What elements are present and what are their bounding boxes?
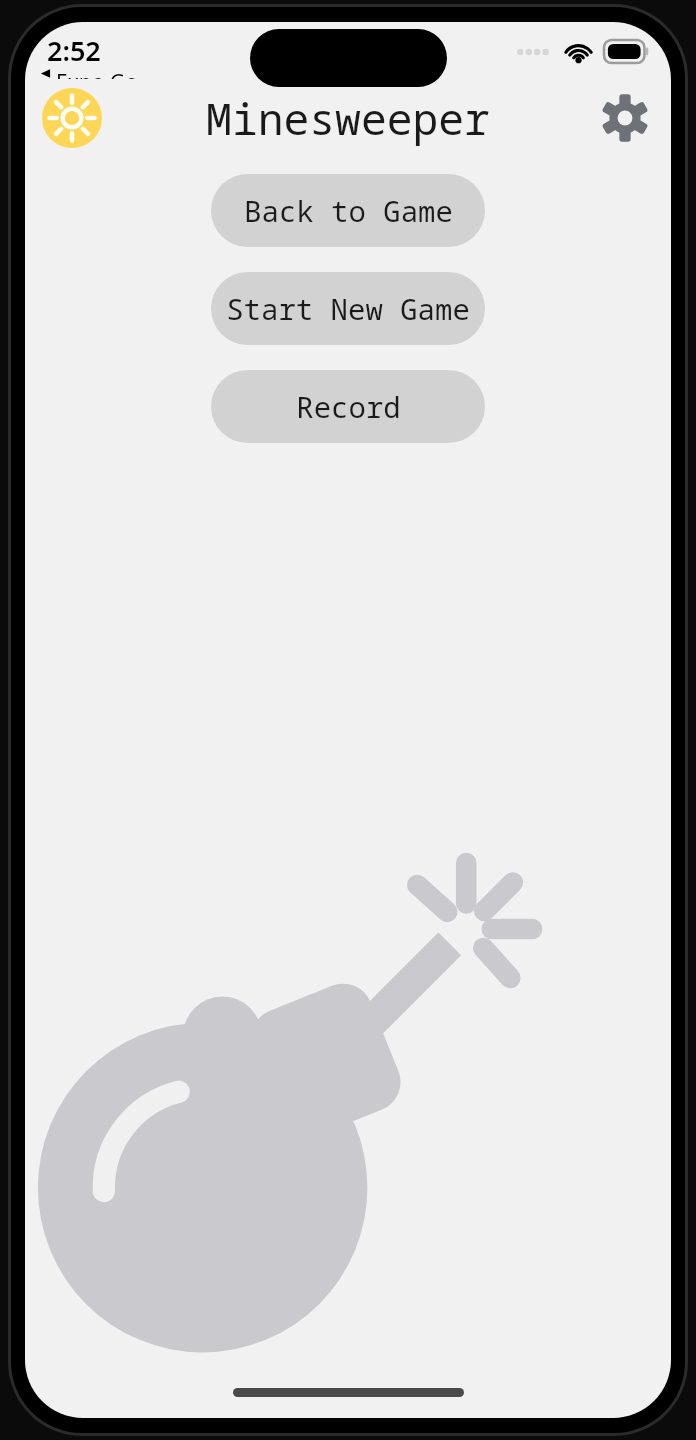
staticText: 2:52 (47, 32, 101, 69)
button[interactable]: Record (211, 370, 485, 443)
button[interactable]: Start New Game (211, 272, 485, 345)
staticText: Back to Game (244, 191, 453, 230)
button[interactable]: Toggle theme (38, 84, 106, 152)
button[interactable]: Back to Game (211, 174, 485, 247)
staticText: Expo Go (56, 68, 138, 79)
staticText: Minesweeper (206, 89, 490, 148)
button[interactable]: Settings (593, 86, 657, 150)
staticText: Start New Game (226, 289, 470, 328)
staticText: Record (296, 387, 401, 426)
